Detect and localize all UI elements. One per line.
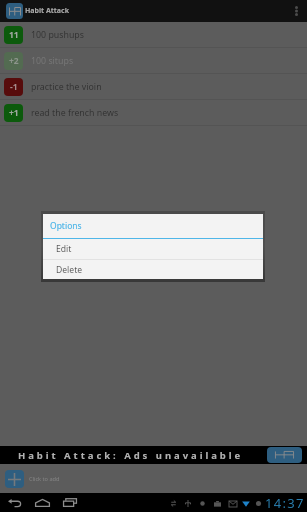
button[interactable]: 11	[0, 22, 307, 48]
staticText: Habit Attack	[25, 6, 69, 16]
staticText: 14:37	[265, 494, 305, 512]
staticText: +1	[9, 107, 19, 119]
button[interactable]: Recent apps	[57, 493, 83, 512]
button[interactable]: -1	[0, 74, 307, 100]
staticText: practice the vioin	[31, 81, 102, 93]
staticText: Click to add	[29, 475, 60, 483]
button[interactable]: Delete	[56, 260, 263, 279]
button[interactable]: More options	[285, 0, 307, 22]
staticText: +2	[9, 55, 19, 67]
button[interactable]: +1	[0, 100, 307, 126]
button[interactable]: Back	[1, 493, 27, 512]
staticText: Edit	[56, 243, 72, 255]
staticText: 100 pushups	[31, 29, 84, 41]
staticText: 11	[9, 29, 19, 41]
staticText: 100 situps	[31, 55, 74, 67]
button[interactable]: +2	[0, 48, 307, 74]
staticText: Options	[50, 220, 82, 232]
button[interactable]: Habit Attack: Ads unavailable	[0, 446, 307, 464]
staticText: -1	[10, 81, 18, 93]
button[interactable]: Home	[29, 493, 55, 512]
staticText: Habit Attack: Ads unavailable	[18, 449, 244, 462]
staticText: Delete	[56, 264, 83, 276]
button[interactable]: Click to add	[5, 464, 307, 493]
button[interactable]: Edit	[56, 239, 263, 259]
staticText: read the french news	[31, 107, 119, 119]
